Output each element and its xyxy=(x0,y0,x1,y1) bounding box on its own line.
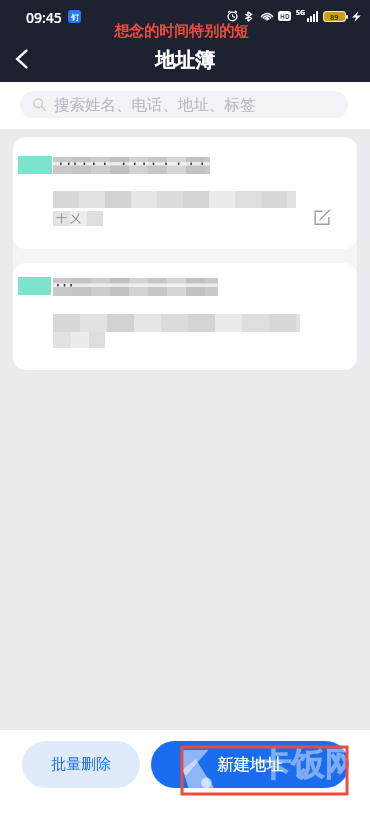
staticText: 卡饭网 xyxy=(258,744,357,786)
staticText: 09:45 xyxy=(26,8,62,27)
staticText: 十 㐅 xyxy=(56,210,81,225)
staticText: HD xyxy=(280,12,290,21)
button[interactable]: 新建地址 xyxy=(151,741,349,788)
button[interactable]: 十 㐅 xyxy=(13,137,357,249)
staticText: 89 xyxy=(330,12,339,22)
button[interactable] xyxy=(13,263,357,370)
button[interactable]: Edit xyxy=(313,208,331,226)
button[interactable]: Back xyxy=(4,41,40,77)
staticText: 想念的时间特别的短 xyxy=(114,22,249,41)
staticText: 5G xyxy=(296,8,306,18)
button[interactable]: 搜索姓名、电话、地址、标签 xyxy=(20,91,348,118)
staticText: 新建地址 xyxy=(217,754,283,775)
staticText: 搜索姓名、电话、地址、标签 xyxy=(54,95,256,115)
staticText: 地址簿 xyxy=(0,48,370,73)
staticText: 钉 xyxy=(71,12,79,22)
button[interactable]: 批量删除 xyxy=(22,741,140,788)
staticText: 批量删除 xyxy=(51,755,111,774)
